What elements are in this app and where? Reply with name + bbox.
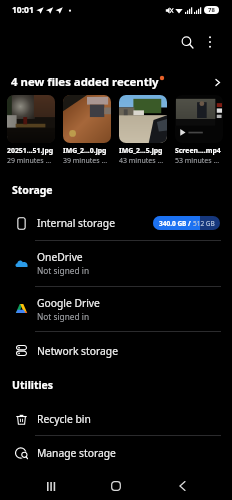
button[interactable]: Manage storage [0, 435, 232, 471]
button[interactable]: More options [199, 31, 221, 53]
staticText: Internal storage [37, 216, 115, 230]
staticText: Utilities [12, 378, 54, 392]
staticText: 4 new files added recently [11, 74, 159, 90]
button[interactable]: Internal storage [0, 206, 232, 240]
staticText: 512 GB [193, 219, 215, 228]
button[interactable]: Google Drive [0, 286, 232, 331]
staticText: 340.0 GB / [159, 219, 193, 228]
button[interactable]: Back [168, 473, 196, 499]
staticText: IMG_2...5.jpg [119, 146, 163, 155]
staticText: Screen....mp4 [175, 146, 221, 155]
button[interactable]: Home [102, 473, 130, 499]
staticText: Google Drive [37, 296, 100, 310]
staticText: 29 minutes ... [7, 156, 52, 166]
staticText: IMG_2...0.jpg [63, 146, 107, 155]
button[interactable]: Screen....mp4 [175, 95, 223, 166]
button[interactable]: Search [177, 32, 197, 52]
staticText: 10:01 [12, 4, 34, 16]
staticText: 78 [208, 6, 215, 14]
staticText: Network storage [37, 344, 118, 358]
staticText: 43 minutes ... [119, 156, 164, 166]
button[interactable]: OneDrive [0, 240, 232, 286]
button[interactable]: Network storage [0, 331, 232, 370]
button[interactable]: 4 new files added recently [0, 70, 232, 94]
button[interactable]: Recycle bin [0, 403, 232, 435]
button[interactable]: 20251...51.jpg [7, 95, 55, 166]
button[interactable]: Recents [37, 473, 65, 499]
staticText: Manage storage [37, 446, 116, 460]
staticText: Not signed in [37, 311, 90, 322]
button[interactable]: IMG_2...0.jpg [63, 95, 111, 166]
staticText: Not signed in [37, 265, 90, 276]
staticText: 20251...51.jpg [7, 146, 54, 155]
staticText: 39 minutes ... [63, 156, 108, 166]
staticText: Recycle bin [37, 412, 91, 426]
button[interactable]: IMG_2...5.jpg [119, 95, 167, 166]
staticText: 53 minutes ... [175, 156, 220, 166]
staticText: OneDrive [37, 250, 83, 264]
staticText: Storage [12, 183, 53, 197]
